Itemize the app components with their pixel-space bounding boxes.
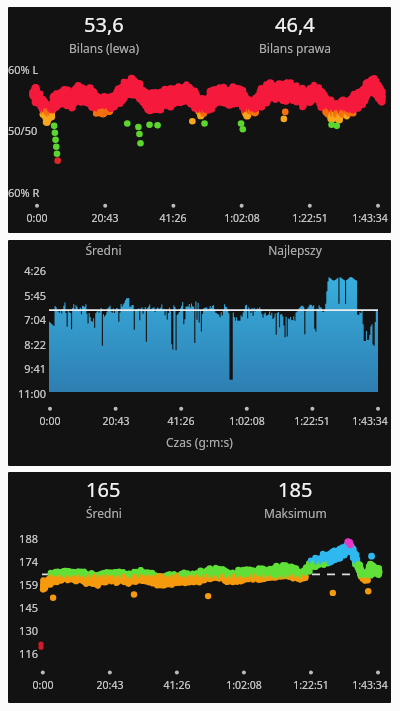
staticText: 20:43 (86, 678, 134, 692)
staticText: 0:00 (26, 414, 74, 428)
staticText: Czas (g:m:s) (166, 434, 233, 450)
staticText: 5:45 (16, 288, 46, 303)
button[interactable]: 53,6 (8, 7, 391, 233)
staticText: 7:04 (16, 312, 46, 327)
staticText: 20:43 (92, 414, 140, 428)
staticText: 1:22:51 (288, 414, 336, 428)
staticText: 1:02:08 (223, 414, 271, 428)
staticText: 50/50 (8, 123, 38, 138)
staticText: 60% L (8, 62, 39, 77)
staticText: 1:02:08 (220, 678, 268, 692)
staticText: 1:02:08 (218, 211, 266, 225)
staticText: 46,4 (275, 11, 315, 38)
staticText: 11:00 (16, 386, 46, 401)
staticText: 1:22:51 (286, 211, 334, 225)
staticText: 0:00 (13, 211, 61, 225)
staticText: 20:43 (81, 211, 129, 225)
staticText: 174 (16, 554, 38, 569)
staticText: 41:26 (153, 678, 201, 692)
staticText: Najlepszy (199, 242, 391, 258)
staticText: 53,6 (84, 11, 124, 38)
staticText: 4:26 (16, 263, 46, 278)
staticText: Bilans (lewa) (69, 40, 139, 56)
staticText: 1:43:34 (349, 414, 391, 428)
staticText: 130 (16, 623, 38, 638)
staticText: 145 (16, 600, 38, 615)
staticText: 1:43:34 (349, 211, 391, 225)
staticText: 1:43:34 (349, 678, 391, 692)
staticText: 41:26 (157, 414, 205, 428)
staticText: 8:22 (16, 337, 46, 352)
staticText: 165 (86, 476, 121, 503)
staticText: 188 (16, 531, 38, 546)
staticText: 1:22:51 (287, 678, 335, 692)
staticText: Średni (8, 242, 199, 258)
staticText: 41:26 (149, 211, 197, 225)
staticText: Bilans prawa (259, 40, 332, 56)
staticText: 116 (16, 646, 38, 661)
staticText: Średni (86, 505, 122, 521)
staticText: 9:41 (16, 361, 46, 376)
button[interactable]: Średni (8, 240, 391, 466)
staticText: 0:00 (19, 678, 67, 692)
staticText: Maksimum (264, 505, 327, 521)
staticText: 60% R (8, 185, 40, 200)
staticText: 185 (278, 476, 313, 503)
button[interactable]: 165 (8, 472, 391, 703)
staticText: 159 (16, 577, 38, 592)
